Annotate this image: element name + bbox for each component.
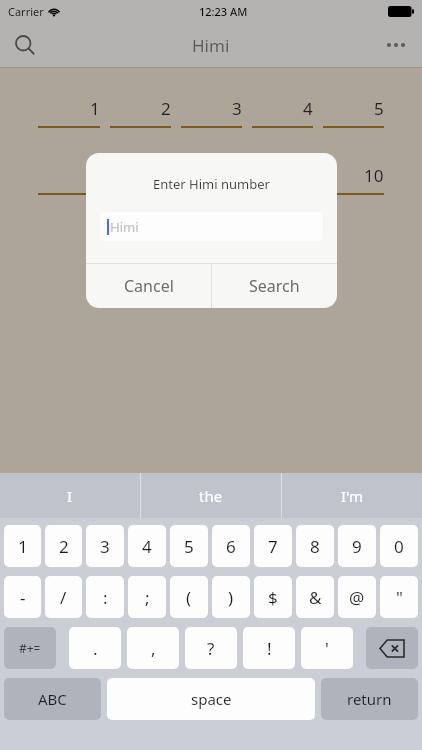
staticText: 0 — [394, 535, 404, 558]
staticText: Search — [249, 275, 300, 297]
staticText: 2 — [161, 97, 171, 120]
button[interactable]: 0 — [380, 525, 418, 567]
button[interactable]: 9 — [338, 525, 376, 567]
button[interactable]: I'm — [282, 473, 422, 518]
staticText: " — [396, 586, 403, 609]
button[interactable]: ' — [301, 627, 353, 669]
staticText: 6 — [226, 535, 236, 558]
button[interactable]: 10 — [323, 164, 384, 195]
button[interactable]: 2 — [110, 97, 171, 128]
staticText: . — [93, 637, 98, 660]
button[interactable]: - — [4, 576, 41, 618]
button[interactable]: 4 — [128, 525, 166, 567]
button[interactable]: ) — [212, 576, 250, 618]
button[interactable]: 6 — [212, 525, 250, 567]
button[interactable]: 4 — [252, 97, 313, 128]
button[interactable]: ( — [170, 576, 208, 618]
button[interactable]: $ — [254, 576, 292, 618]
staticText: 7 — [161, 164, 171, 187]
button[interactable]: the — [141, 473, 281, 518]
button[interactable]: , — [127, 627, 179, 669]
button[interactable]: space — [107, 678, 315, 720]
staticText: 8 — [310, 535, 320, 558]
staticText: 3 — [232, 97, 242, 120]
staticText: Cancel — [124, 275, 174, 297]
staticText: : — [103, 586, 108, 609]
staticText: 12:23 AM — [199, 4, 248, 19]
button[interactable]: @ — [338, 576, 376, 618]
button[interactable]: Cancel — [86, 264, 211, 308]
staticText: space — [191, 689, 232, 709]
staticText: Enter Himi number — [86, 175, 337, 193]
button[interactable]: More options — [376, 25, 416, 65]
button[interactable]: 5 — [170, 525, 208, 567]
staticText: , — [151, 637, 156, 660]
staticText: @ — [349, 586, 365, 609]
button[interactable]: 3 — [86, 525, 124, 567]
button[interactable]: 7 — [110, 164, 171, 195]
staticText: ) — [228, 586, 234, 609]
staticText: return — [347, 689, 392, 709]
button[interactable]: #+= — [4, 627, 56, 669]
staticText: 5 — [374, 97, 384, 120]
button[interactable]: 6 — [38, 164, 100, 195]
staticText: ( — [186, 586, 192, 609]
staticText: 9 — [352, 535, 362, 558]
staticText: Himi — [192, 34, 230, 57]
button[interactable]: Himi — [100, 212, 323, 241]
staticText: 2 — [59, 535, 69, 558]
staticText: Carrier — [8, 4, 44, 19]
staticText: 4 — [303, 97, 313, 120]
button[interactable]: ; — [128, 576, 166, 618]
button[interactable]: 8 — [181, 164, 242, 195]
staticText: 7 — [268, 535, 278, 558]
button[interactable]: ABC — [4, 678, 101, 720]
staticText: 4 — [142, 535, 152, 558]
button[interactable]: I — [0, 473, 140, 518]
staticText: I — [67, 486, 73, 506]
staticText: I'm — [341, 486, 364, 506]
button[interactable]: 2 — [45, 525, 82, 567]
staticText: ! — [267, 637, 272, 660]
staticText: 1 — [18, 535, 28, 558]
staticText: ' — [325, 637, 329, 660]
button[interactable]: . — [69, 627, 121, 669]
button[interactable]: & — [296, 576, 334, 618]
button[interactable]: 1 — [38, 97, 100, 128]
staticText: / — [60, 586, 67, 609]
staticText: 1 — [90, 97, 100, 120]
button[interactable]: 9 — [252, 164, 313, 195]
staticText: & — [309, 586, 322, 609]
staticText: 8 — [232, 164, 242, 187]
staticText: 10 — [364, 164, 384, 187]
button[interactable]: 5 — [323, 97, 384, 128]
button[interactable]: ! — [243, 627, 295, 669]
staticText: $ — [268, 586, 278, 609]
button[interactable]: Search — [212, 264, 337, 308]
staticText: Himi — [110, 218, 139, 236]
button[interactable]: return — [321, 678, 418, 720]
button[interactable]: 7 — [254, 525, 292, 567]
staticText: ABC — [38, 689, 67, 709]
button[interactable]: Search — [6, 26, 44, 64]
button[interactable]: ? — [185, 627, 237, 669]
staticText: ; — [145, 586, 150, 609]
staticText: 3 — [100, 535, 110, 558]
staticText: #+= — [19, 640, 41, 656]
button[interactable]: 3 — [181, 97, 242, 128]
button[interactable]: 8 — [296, 525, 334, 567]
staticText: the — [199, 486, 223, 506]
staticText: - — [20, 586, 26, 609]
staticText: 5 — [184, 535, 194, 558]
button[interactable]: " — [380, 576, 418, 618]
button[interactable]: 1 — [4, 525, 41, 567]
button[interactable]: Delete — [366, 627, 418, 669]
button[interactable]: / — [45, 576, 82, 618]
button[interactable]: : — [86, 576, 124, 618]
staticText: ? — [207, 637, 215, 660]
